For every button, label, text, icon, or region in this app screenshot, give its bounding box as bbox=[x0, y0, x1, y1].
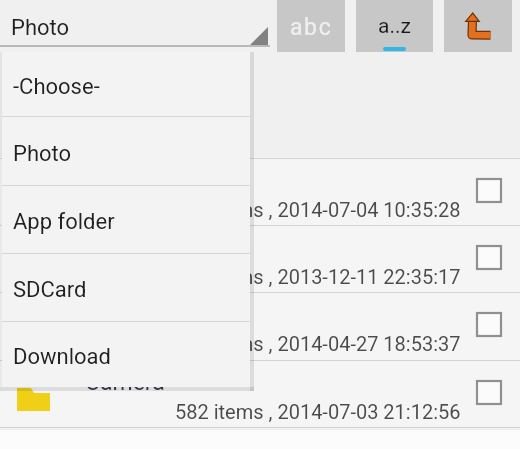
button[interactable]: Photo bbox=[0, 0, 270, 47]
staticText: App folder bbox=[13, 209, 115, 235]
staticText: Download bbox=[85, 234, 188, 261]
staticText: 126 items , 2013-12-11 22:35:17 bbox=[175, 265, 461, 288]
staticText: Download bbox=[13, 344, 111, 370]
button[interactable]: a..z bbox=[356, 0, 433, 52]
button[interactable]: Download bbox=[0, 225, 520, 292]
staticText: 582 items , 2014-07-04 10:35:28 bbox=[175, 198, 461, 221]
button[interactable]: Download bbox=[2, 322, 250, 387]
staticText: Photo bbox=[13, 141, 72, 167]
staticText: SDCard bbox=[13, 277, 87, 303]
staticText: 318 items , 2014-04-27 18:53:37 bbox=[175, 332, 461, 355]
button[interactable]: abc bbox=[277, 0, 345, 52]
button[interactable]: SDCard bbox=[2, 254, 250, 322]
staticText: -Choose- bbox=[13, 74, 100, 100]
staticText: Camera bbox=[85, 369, 165, 396]
staticText: Camera bbox=[85, 167, 165, 194]
staticText: 582 items , 2014-07-03 21:12:56 bbox=[175, 400, 461, 423]
staticText: Pictures bbox=[85, 301, 169, 328]
button[interactable]: Camera bbox=[0, 158, 520, 225]
button[interactable]: Photo bbox=[2, 117, 250, 186]
staticText: Photo bbox=[11, 15, 70, 41]
button[interactable]: Camera bbox=[0, 360, 520, 427]
staticText: abc bbox=[290, 14, 333, 41]
button[interactable]: Go up one folder bbox=[444, 0, 512, 52]
button[interactable]: App folder bbox=[2, 186, 250, 254]
button[interactable]: -Choose- bbox=[2, 52, 250, 117]
button[interactable]: Pictures bbox=[0, 292, 520, 359]
staticText: a..z bbox=[378, 14, 411, 39]
